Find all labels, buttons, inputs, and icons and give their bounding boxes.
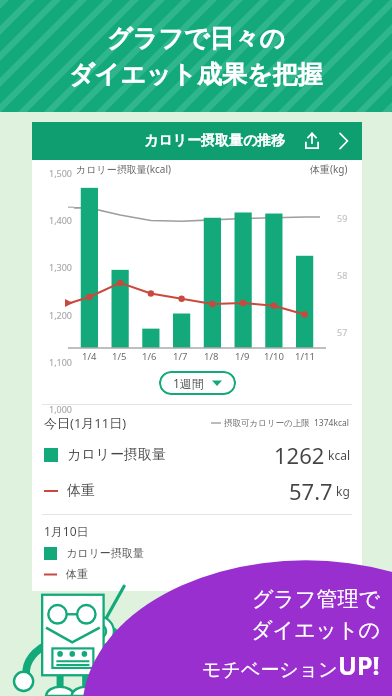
button[interactable]: 体重	[44, 476, 350, 506]
staticText: 1,400	[34, 214, 72, 226]
staticText: カロリー摂取量	[66, 546, 144, 560]
staticText: 1/5	[112, 350, 127, 363]
staticText: 1/9	[235, 350, 250, 363]
staticText: 1,100	[34, 356, 72, 368]
staticText: 1月10日	[44, 523, 89, 539]
staticText: kcal	[328, 447, 350, 463]
staticText: 体重	[66, 567, 88, 581]
button[interactable]: カロリー摂取量の推移	[32, 122, 362, 160]
staticText: 体重(kg)	[310, 162, 348, 176]
staticText: 1,500	[34, 167, 72, 179]
staticText: 1374kcal	[314, 417, 350, 429]
staticText: 1/4	[82, 350, 97, 363]
staticText: 1,000	[34, 403, 72, 415]
staticText: モチベーション	[202, 658, 338, 682]
staticText: カロリー摂取量	[67, 446, 166, 464]
staticText: 58	[337, 269, 348, 281]
button[interactable]: Share	[300, 129, 324, 153]
button[interactable]: 体重	[44, 567, 350, 581]
staticText: 59	[337, 212, 348, 224]
staticText: 57.7	[289, 476, 333, 506]
staticText: 摂取可カロリーの上限	[224, 418, 310, 429]
staticText: 1/6	[142, 350, 157, 363]
staticText: 今日(1月11日)	[44, 414, 127, 432]
staticText: 57	[337, 326, 348, 338]
staticText: 1,200	[34, 309, 72, 321]
staticText: ダイエットの	[251, 617, 380, 643]
staticText: カロリー摂取量の推移	[144, 132, 286, 150]
staticText: カロリー摂取量(kcal)	[76, 162, 172, 176]
button[interactable]: Open	[330, 128, 356, 154]
button[interactable]: 1週間	[159, 371, 236, 395]
staticText: 1/8	[204, 350, 219, 363]
staticText: UP!	[338, 648, 380, 682]
staticText: 1/11	[295, 350, 315, 363]
staticText: 1/7	[173, 350, 188, 363]
staticText: ダイエット成果を把握	[69, 59, 323, 90]
staticText: グラフ管理で	[252, 586, 380, 612]
staticText: 1262	[274, 440, 325, 470]
button[interactable]: カロリー摂取量	[44, 546, 350, 560]
staticText: kg	[336, 483, 350, 499]
staticText: 体重	[67, 482, 95, 500]
staticText: グラフで日々の	[107, 23, 285, 54]
staticText: 1週間	[173, 375, 204, 391]
staticText: 1,300	[34, 261, 72, 273]
button[interactable]: カロリー摂取量	[44, 440, 350, 470]
staticText: 1/10	[264, 350, 284, 363]
